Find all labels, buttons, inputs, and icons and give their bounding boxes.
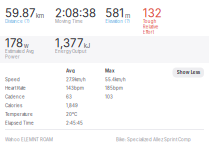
staticText: 1,849 <box>66 103 78 108</box>
staticText: Elevation (?) <box>105 19 130 24</box>
staticText: Show Less <box>177 70 200 75</box>
staticText: Cadence <box>5 94 25 100</box>
staticText: Calories <box>5 103 22 108</box>
staticText: Speed <box>5 77 20 82</box>
staticText: kJ <box>84 42 91 50</box>
staticText: Estimated Avg Power <box>5 49 34 59</box>
staticText: Wahoo ELEMNT ROAM <box>5 137 53 142</box>
staticText: 59.87 <box>5 6 35 20</box>
staticText: 2:08:38 <box>55 6 96 20</box>
staticText: 103 <box>105 94 113 100</box>
staticText: Avg <box>66 68 75 73</box>
staticText: Energy Output <box>55 49 86 54</box>
button[interactable]: Show Less <box>172 67 204 77</box>
staticText: m <box>125 12 130 20</box>
staticText: Temperature <box>5 112 33 117</box>
staticText: 1,377 <box>55 36 83 50</box>
staticText: Elapsed Time <box>5 120 34 126</box>
staticText: 132 <box>143 6 162 20</box>
staticText: 20°C <box>66 112 77 117</box>
staticText: 581 <box>105 6 124 20</box>
staticText: 63 <box>66 94 72 100</box>
staticText: w <box>24 42 29 50</box>
staticText: 185bpm <box>105 86 123 91</box>
staticText: Tough Relative Effort <box>143 19 159 35</box>
staticText: 2:45:45 <box>66 120 83 126</box>
staticText: Bike: Specialized Allez Sprint Comp <box>116 137 191 142</box>
staticText: km <box>36 12 44 20</box>
staticText: Moving Time <box>55 19 83 24</box>
staticText: 55.4km/h <box>105 77 126 82</box>
staticText: Distance (?) <box>5 19 30 24</box>
staticText: Heart Rate <box>5 86 26 91</box>
staticText: 178 <box>5 36 23 50</box>
staticText: Max <box>105 68 115 73</box>
staticText: 27.9km/h <box>66 77 86 82</box>
staticText: 143bpm <box>66 86 84 91</box>
